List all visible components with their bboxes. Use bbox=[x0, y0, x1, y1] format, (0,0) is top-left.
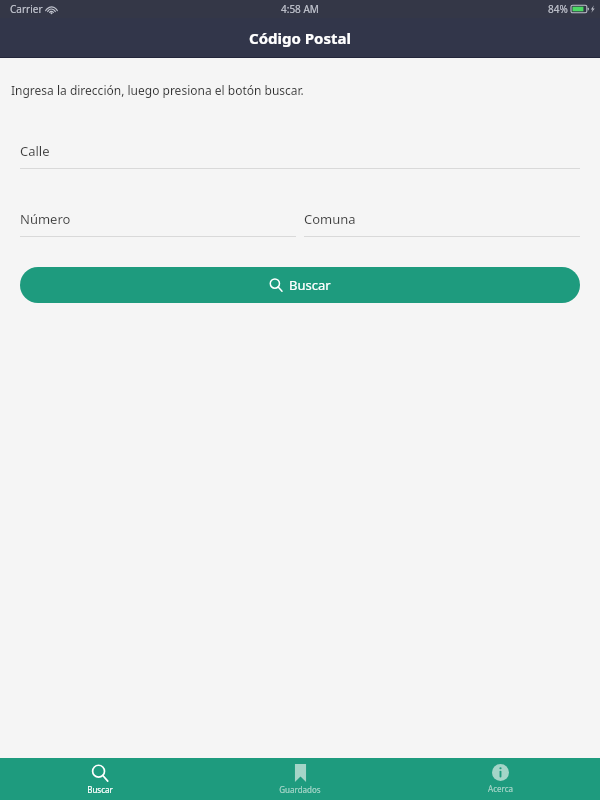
staticText: Calle bbox=[20, 142, 50, 160]
staticText: Ingresa la dirección, luego presiona el … bbox=[11, 82, 304, 98]
staticText: Comuna bbox=[304, 210, 356, 228]
button[interactable]: Acerca bbox=[400, 758, 600, 800]
staticText: Número bbox=[20, 210, 71, 228]
staticText: 4:58 AM bbox=[281, 2, 319, 16]
button[interactable]: Buscar bbox=[0, 758, 200, 800]
staticText: Guardados bbox=[279, 784, 321, 795]
staticText: 84% bbox=[548, 2, 568, 16]
staticText: Buscar bbox=[87, 784, 113, 795]
staticText: Carrier bbox=[10, 2, 43, 16]
staticText: Acerca bbox=[488, 783, 513, 794]
staticText: Buscar bbox=[289, 276, 331, 294]
button[interactable]: Número bbox=[20, 210, 296, 237]
staticText: Código Postal bbox=[249, 28, 351, 48]
button[interactable]: Comuna bbox=[304, 210, 580, 237]
button[interactable]: Calle bbox=[20, 142, 580, 169]
button[interactable]: Buscar bbox=[20, 267, 580, 303]
button[interactable]: Guardados bbox=[200, 758, 400, 800]
